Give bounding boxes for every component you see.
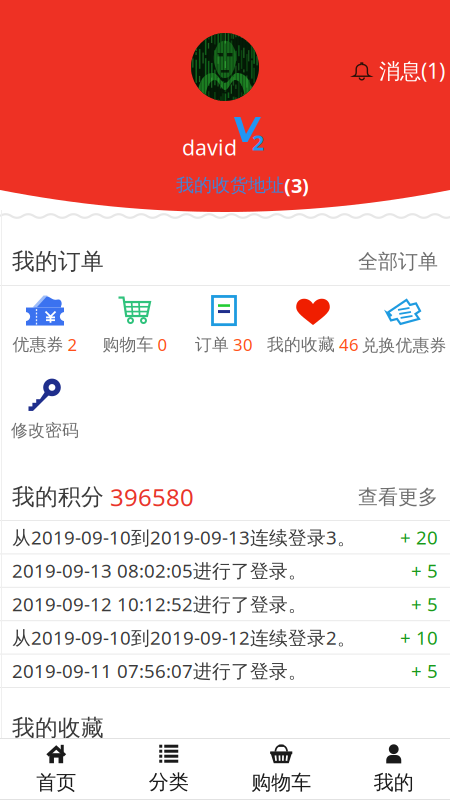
staticText: 我的收藏 <box>12 714 104 742</box>
staticText: + 20 <box>400 525 438 550</box>
button[interactable]: 兑换优惠券 <box>358 288 450 359</box>
staticText: 优惠券 <box>12 334 63 355</box>
staticText: + 5 <box>411 658 438 683</box>
staticText: 兑换优惠券 <box>361 335 446 356</box>
staticText: 查看更多 <box>358 485 438 509</box>
staticText: 我的收藏 <box>267 334 335 355</box>
staticText: 46 <box>339 333 359 356</box>
staticText: 2019-09-12 10:12:52进行了登录。 <box>12 592 307 616</box>
button[interactable]: 我的 <box>337 734 450 800</box>
staticText: 消息(1) <box>379 56 445 85</box>
staticText: 396580 <box>104 481 194 513</box>
button[interactable]: 分类 <box>112 735 225 800</box>
button[interactable]: 首页 <box>0 734 112 800</box>
staticText: 我的积分 <box>12 483 104 511</box>
button[interactable]: 我的收藏 <box>268 288 358 359</box>
button[interactable]: 查看更多 <box>344 479 438 515</box>
staticText: 分类 <box>149 770 189 794</box>
staticText: 购物车 <box>251 770 311 795</box>
staticText: 我的 <box>374 770 414 795</box>
staticText: 2019-09-11 07:56:07进行了登录。 <box>12 658 307 683</box>
staticText: 全部订单 <box>358 249 438 274</box>
staticText: 购物车 <box>102 334 153 355</box>
staticText: 30 <box>233 333 253 356</box>
button[interactable]: 优惠券 <box>0 288 90 359</box>
staticText: david <box>182 133 237 161</box>
button[interactable]: 购物车 <box>90 288 180 359</box>
staticText: + 5 <box>411 558 438 583</box>
staticText: + 5 <box>411 592 438 616</box>
staticText: 我的收货地址 <box>176 174 284 197</box>
staticText: 2 <box>67 333 77 356</box>
staticText: (3) <box>284 172 309 199</box>
staticText: 首页 <box>36 770 76 795</box>
button[interactable]: 订单 <box>180 288 268 359</box>
staticText: 订单 <box>195 334 229 355</box>
staticText: 从2019-09-10到2019-09-13连续登录3。 <box>12 525 356 550</box>
button[interactable]: 消息 <box>348 50 449 91</box>
staticText: 我的订单 <box>12 248 104 275</box>
staticText: 从2019-09-10到2019-09-12连续登录2。 <box>12 625 356 650</box>
staticText: 2 <box>252 128 264 156</box>
staticText: 0 <box>157 333 167 356</box>
button[interactable]: 全部订单 <box>344 243 438 280</box>
staticText: 修改密码 <box>11 420 79 441</box>
button[interactable]: 修改密码 <box>0 373 90 444</box>
staticText: + 10 <box>400 625 438 650</box>
button[interactable]: 购物车 <box>225 734 337 800</box>
button[interactable]: 我的收货地址 <box>170 168 315 203</box>
staticText: 2019-09-13 08:02:05进行了登录。 <box>12 558 307 583</box>
